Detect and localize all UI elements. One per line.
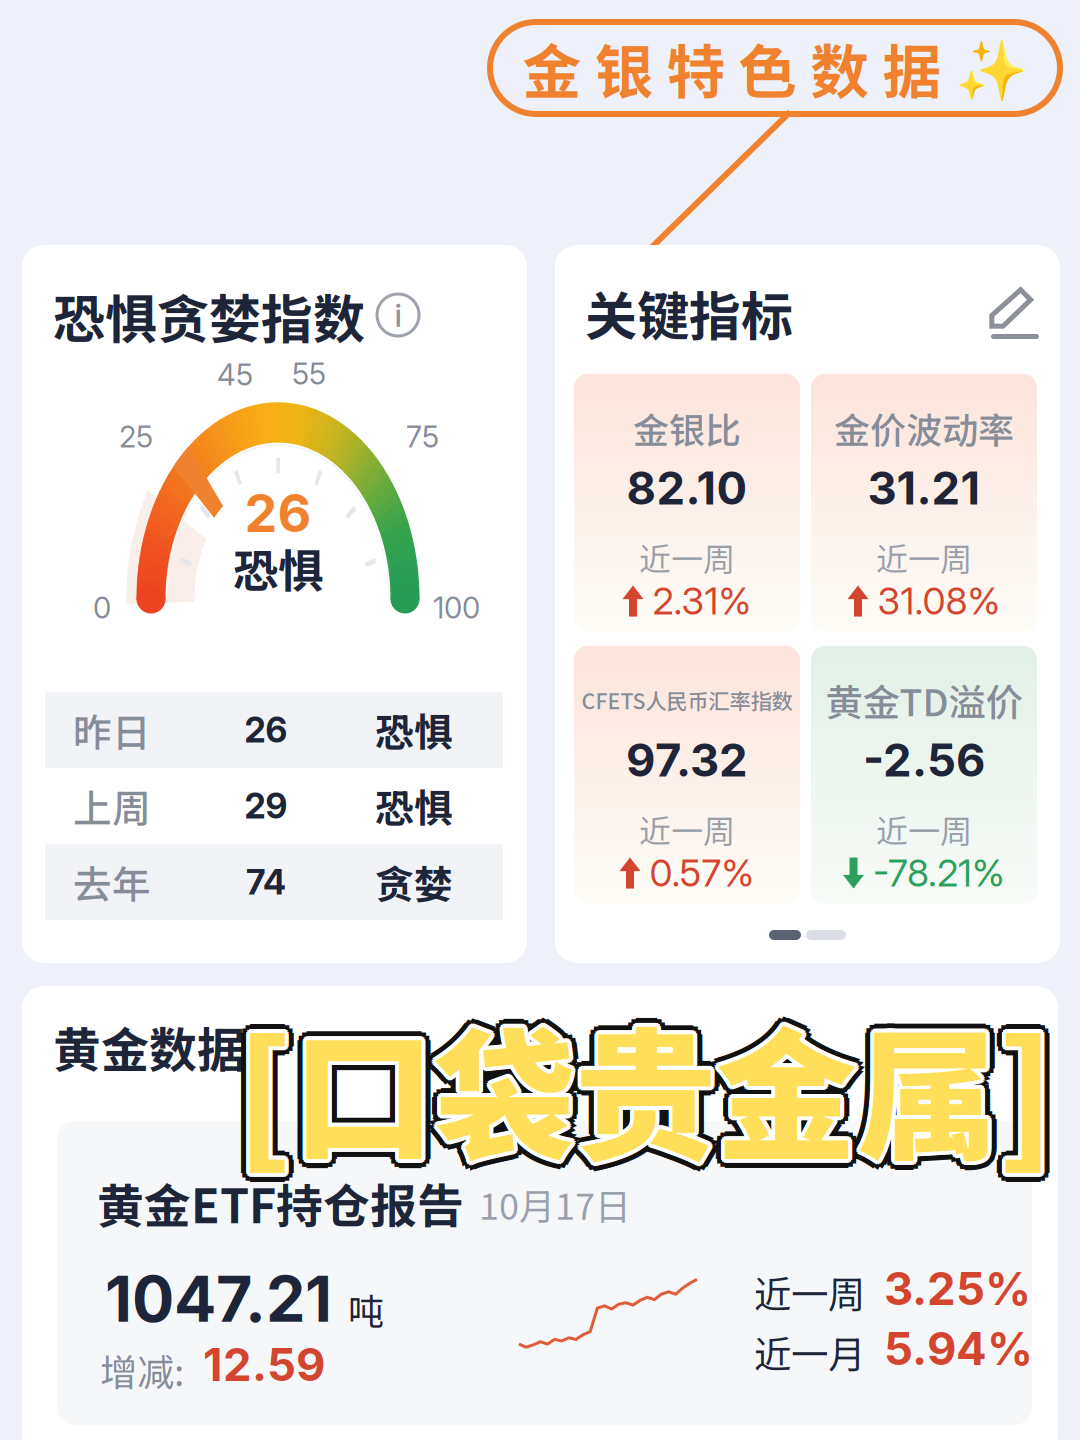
staticText: 金 银 特 色 数 据 ✨ bbox=[522, 25, 1027, 110]
staticText: 近一周 bbox=[754, 1265, 865, 1319]
button[interactable]: 金 银 特 色 数 据 ✨ bbox=[490, 22, 1060, 114]
staticText: 近一月 bbox=[754, 1325, 865, 1379]
button[interactable]: 黄金ETF持仓报告 bbox=[57, 1121, 1032, 1425]
staticText: 25 bbox=[119, 419, 153, 454]
staticText: 100 bbox=[433, 590, 480, 625]
staticText: 0 bbox=[93, 590, 111, 625]
staticText: 55 bbox=[292, 356, 326, 391]
staticText: 75 bbox=[406, 419, 439, 454]
button[interactable]: CFETS人民币汇率指数 bbox=[574, 646, 800, 904]
staticText: CFETS人民币汇率指数 bbox=[581, 685, 792, 715]
staticText: 0.57% bbox=[649, 850, 754, 896]
staticText: 1047.21 bbox=[105, 1261, 332, 1337]
staticText: [口袋贵金属] bbox=[236, 993, 1055, 1198]
staticText: [口袋贵金属] bbox=[237, 988, 1056, 1193]
staticText: 5.94% bbox=[884, 1321, 1033, 1376]
staticText: [口袋贵金属] bbox=[232, 983, 1051, 1188]
staticText: 金价波动率 bbox=[834, 402, 1014, 454]
staticText: [口袋贵金属] bbox=[237, 980, 1056, 1185]
staticText: [口袋贵金属] bbox=[240, 976, 1059, 1181]
staticText: 26 bbox=[244, 481, 311, 544]
staticText: 近一周 bbox=[876, 806, 972, 852]
staticText: 去年 bbox=[73, 854, 151, 910]
staticText: 29 bbox=[244, 785, 287, 827]
staticText: 31.21 bbox=[867, 461, 980, 515]
staticText: 恐惧贪婪指数 bbox=[53, 278, 365, 353]
staticText: -78.21% bbox=[873, 850, 1005, 896]
staticText: 增减: bbox=[100, 1343, 184, 1397]
staticText: 2.31% bbox=[652, 578, 751, 624]
staticText: 45 bbox=[217, 357, 253, 392]
button[interactable]: 金银比 bbox=[574, 374, 800, 632]
staticText: 贪婪 bbox=[375, 854, 453, 910]
staticText: [口袋贵金属] bbox=[244, 979, 1063, 1184]
staticText: 31.08% bbox=[877, 578, 1000, 624]
button[interactable]: 指数说明 bbox=[377, 294, 419, 336]
staticText: 97.32 bbox=[626, 733, 748, 787]
staticText: [口袋贵金属] bbox=[231, 976, 1050, 1181]
staticText: -2.56 bbox=[863, 733, 985, 787]
staticText: [口袋贵金属] bbox=[240, 983, 1059, 1188]
staticText: 74 bbox=[246, 861, 286, 903]
staticText: [口袋贵金属] bbox=[228, 988, 1047, 1193]
button[interactable]: 编辑指标 bbox=[990, 293, 1040, 345]
staticText: 昨日 bbox=[73, 702, 151, 758]
staticText: 金银比 bbox=[633, 402, 741, 454]
staticText: [口袋贵金属] bbox=[236, 975, 1055, 1180]
staticText: [口袋贵金属] bbox=[240, 985, 1059, 1190]
staticText: 近一周 bbox=[639, 806, 735, 852]
staticText: [口袋贵金属] bbox=[235, 980, 1054, 1185]
staticText: 10月17日 bbox=[479, 1178, 631, 1230]
staticText: 黄金数据 bbox=[53, 1012, 245, 1081]
staticText: [口袋贵金属] bbox=[236, 984, 1055, 1189]
staticText: [口袋贵金属] bbox=[245, 984, 1064, 1189]
staticText: 恐惧 bbox=[233, 535, 323, 601]
staticText: 3.25% bbox=[884, 1261, 1031, 1316]
staticText: 恐惧 bbox=[375, 778, 453, 834]
staticText: [口袋贵金属] bbox=[239, 981, 1058, 1186]
staticText: [口袋贵金属] bbox=[240, 992, 1059, 1196]
staticText: 12.59 bbox=[203, 1337, 325, 1392]
staticText: 26 bbox=[244, 709, 287, 751]
staticText: 恐惧 bbox=[375, 702, 453, 758]
staticText: [口袋贵金属] bbox=[228, 979, 1047, 1184]
staticText: 关键指标 bbox=[585, 275, 793, 350]
staticText: [口袋贵金属] bbox=[232, 985, 1051, 1190]
staticText: [口袋贵金属] bbox=[233, 981, 1052, 1186]
staticText: 82.10 bbox=[626, 461, 747, 515]
staticText: 近一周 bbox=[639, 534, 735, 580]
staticText: [口袋贵金属] bbox=[239, 987, 1058, 1191]
staticText: [口袋贵金属] bbox=[235, 988, 1054, 1193]
staticText: 黄金TD溢价 bbox=[825, 673, 1022, 727]
staticText: i bbox=[394, 296, 401, 334]
staticText: [口袋贵金属] bbox=[227, 984, 1046, 1189]
button[interactable]: 金价波动率 bbox=[811, 374, 1037, 632]
staticText: [口袋贵金属] bbox=[244, 988, 1063, 1193]
staticText: 近一周 bbox=[876, 534, 972, 580]
staticText: [口袋贵金属] bbox=[233, 987, 1052, 1191]
staticText: [口袋贵金属] bbox=[231, 992, 1050, 1196]
button[interactable]: 黄金TD溢价 bbox=[811, 646, 1037, 904]
staticText: 黄金ETF持仓报告 bbox=[97, 1169, 464, 1237]
staticText: 吨 bbox=[348, 1283, 384, 1335]
staticText: 上周 bbox=[73, 778, 151, 834]
